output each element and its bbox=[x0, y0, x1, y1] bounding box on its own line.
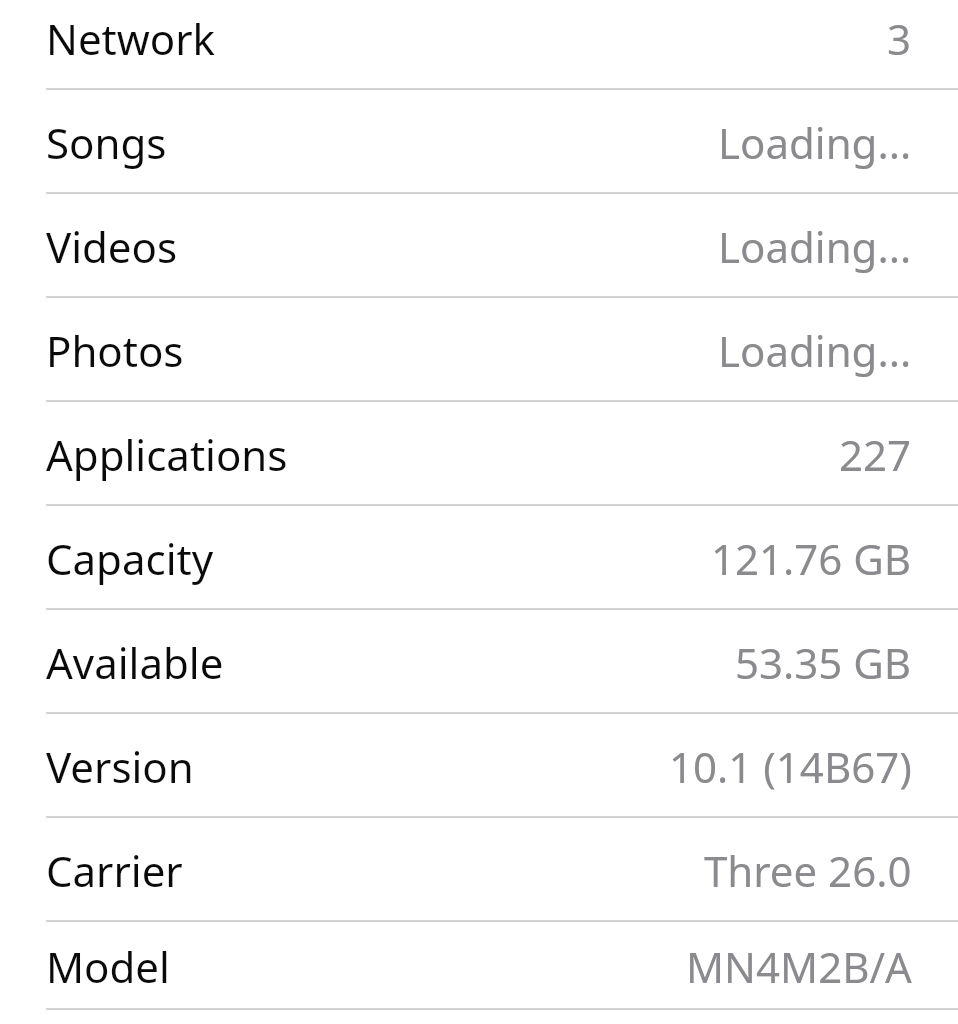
staticText: Capacity bbox=[46, 530, 214, 587]
staticText: Applications bbox=[46, 426, 288, 483]
button[interactable]: Version bbox=[0, 714, 958, 818]
button[interactable]: Photos bbox=[0, 298, 958, 402]
staticText: 3 bbox=[887, 10, 912, 67]
staticText: Loading... bbox=[718, 322, 912, 379]
staticText: Photos bbox=[46, 322, 184, 379]
staticText: 10.1 (14B67) bbox=[669, 738, 912, 795]
staticText: 53.35 GB bbox=[735, 634, 912, 691]
button[interactable]: Available bbox=[0, 610, 958, 714]
button[interactable]: Network bbox=[0, 0, 958, 90]
staticText: Available bbox=[46, 634, 224, 691]
staticText: Three 26.0 bbox=[704, 842, 912, 899]
staticText: Videos bbox=[46, 218, 178, 275]
staticText: Network bbox=[46, 10, 215, 67]
staticText: Loading... bbox=[718, 218, 912, 275]
staticText: 121.76 GB bbox=[711, 530, 912, 587]
button[interactable]: Videos bbox=[0, 194, 958, 298]
staticText: Version bbox=[46, 738, 194, 795]
staticText: MN4M2B/A bbox=[686, 938, 912, 995]
staticText: Model bbox=[46, 938, 170, 995]
button[interactable]: Songs bbox=[0, 90, 958, 194]
button[interactable]: Applications bbox=[0, 402, 958, 506]
staticText: Carrier bbox=[46, 842, 183, 899]
button[interactable]: Model bbox=[0, 922, 958, 1010]
staticText: Loading... bbox=[718, 114, 912, 171]
staticText: 227 bbox=[839, 426, 912, 483]
button[interactable]: Carrier bbox=[0, 818, 958, 922]
staticText: Songs bbox=[46, 114, 167, 171]
button[interactable]: Capacity bbox=[0, 506, 958, 610]
